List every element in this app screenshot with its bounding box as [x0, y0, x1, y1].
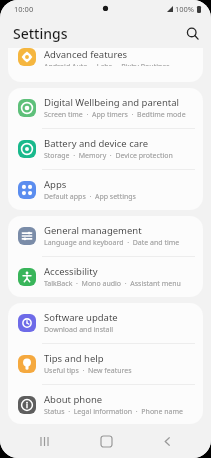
button[interactable]: Tips and help [8, 344, 203, 384]
button[interactable]: Digital Wellbeing and parental controls [8, 88, 203, 128]
button[interactable]: Software update [8, 303, 203, 343]
staticText: Settings [13, 24, 68, 43]
button[interactable]: General management [8, 216, 203, 256]
staticText: Android Auto · Labs · Bixby Routines [44, 62, 170, 66]
staticText: Software update [44, 311, 118, 324]
button[interactable]: Search [181, 22, 203, 44]
button[interactable]: Recents [26, 424, 62, 458]
button[interactable]: Advanced features [8, 48, 203, 74]
staticText: Screen time · App timers · Bedtime mode [44, 110, 186, 120]
staticText: Digital Wellbeing and parental controls [44, 96, 195, 109]
button[interactable]: Accessibility [8, 257, 203, 297]
button[interactable]: Apps [8, 170, 203, 210]
staticText: About phone [44, 393, 103, 406]
button[interactable]: About phone [8, 385, 203, 424]
staticText: Download and install [44, 325, 114, 335]
staticText: Useful tips · New features [44, 366, 132, 376]
staticText: Accessibility [44, 265, 98, 278]
staticText: Tips and help [44, 352, 104, 365]
staticText: TalkBack · Mono audio · Assistant menu [44, 279, 181, 289]
staticText: Default apps · App settings [44, 192, 136, 202]
staticText: General management [44, 224, 142, 237]
staticText: Language and keyboard · Date and time [44, 238, 180, 248]
staticText: Battery and device care [44, 137, 149, 150]
button[interactable]: Battery and device care [8, 129, 203, 169]
button[interactable]: Home [88, 424, 124, 458]
staticText: Advanced features [44, 48, 128, 61]
staticText: Apps [44, 178, 67, 191]
staticText: Status · Legal information · Phone name [44, 407, 183, 416]
staticText: 10:00 [14, 4, 34, 14]
staticText: 100% [175, 4, 195, 14]
staticText: Storage · Memory · Device protection [44, 151, 173, 161]
button[interactable]: Back [149, 424, 185, 458]
